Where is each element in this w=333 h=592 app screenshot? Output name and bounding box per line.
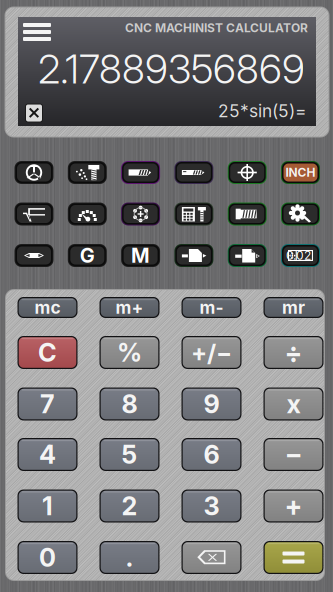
staticText: 5 [121, 439, 137, 470]
button[interactable]: Inch units [281, 161, 320, 184]
staticText: + [284, 490, 302, 522]
button[interactable]: mr [263, 297, 323, 318]
staticText: 7 [40, 389, 55, 419]
staticText: x [286, 389, 300, 419]
button[interactable]: Tap drill [68, 161, 107, 184]
staticText: +/− [191, 338, 232, 367]
staticText: CNC MACHINIST CALCULATOR [125, 21, 308, 35]
staticText: mr [282, 297, 305, 318]
staticText: 1 [42, 491, 53, 521]
staticText: 3 [203, 491, 219, 521]
button[interactable]: +/− [181, 336, 241, 369]
button[interactable]: x [263, 387, 323, 420]
button[interactable]: + [263, 489, 323, 522]
staticText: % [117, 337, 142, 368]
button[interactable]: . [99, 541, 159, 574]
button[interactable]: Speeds and feeds [68, 202, 107, 225]
button[interactable]: 6 [181, 438, 241, 471]
button[interactable]: m- [181, 297, 241, 318]
staticText: G [80, 243, 95, 268]
staticText: M [131, 243, 150, 268]
staticText: 2 [121, 491, 137, 521]
staticText: 6 [203, 439, 219, 470]
button[interactable]: M codes [121, 244, 160, 267]
staticText: . [125, 542, 133, 573]
button[interactable]: Tool search [281, 202, 320, 225]
button[interactable]: Thread data [228, 202, 267, 225]
staticText: 2.17889356869 [38, 45, 305, 93]
button[interactable]: ÷ [263, 336, 323, 369]
button[interactable]: Taper [14, 244, 53, 267]
button[interactable]: 5 [99, 438, 159, 471]
button[interactable]: 8 [99, 387, 159, 420]
button[interactable]: m+ [99, 297, 159, 318]
button[interactable]: Calculator tools [174, 202, 213, 225]
button[interactable]: Center finder [174, 244, 213, 267]
button[interactable]: 0 [17, 541, 77, 574]
button[interactable]: – [263, 438, 323, 471]
staticText: 8 [121, 389, 137, 419]
button[interactable]: C [17, 336, 77, 369]
button[interactable]: Backspace [181, 541, 241, 574]
staticText: INCH [285, 165, 315, 180]
staticText: 9 [203, 389, 219, 419]
button[interactable]: Thread calculator [14, 161, 53, 184]
button[interactable]: 2 [99, 489, 159, 522]
button[interactable]: 4 [17, 438, 77, 471]
button[interactable]: Trigonometry [14, 202, 53, 225]
button[interactable]: 1 [17, 489, 77, 522]
button[interactable]: Clear entry [25, 103, 43, 122]
staticText: 0.02 [286, 248, 311, 263]
staticText: ÷ [284, 336, 302, 369]
button[interactable]: mc [17, 297, 77, 318]
staticText: m+ [115, 297, 143, 318]
button[interactable]: Gage [228, 244, 267, 267]
staticText: 4 [39, 439, 56, 470]
button[interactable]: 3 [181, 489, 241, 522]
button[interactable]: Equals [263, 541, 323, 574]
button[interactable]: End mill [121, 161, 160, 184]
button[interactable]: Menu [21, 21, 53, 43]
button[interactable]: Tolerance [281, 244, 320, 267]
button[interactable]: 9 [181, 387, 241, 420]
staticText: m- [199, 297, 223, 318]
button[interactable]: Drill [174, 161, 213, 184]
button[interactable]: 7 [17, 387, 77, 420]
staticText: 25*sin(5)= [218, 100, 306, 121]
staticText: – [287, 438, 300, 471]
staticText: 0 [39, 542, 56, 573]
staticText: mc [34, 297, 60, 318]
staticText: C [38, 337, 57, 368]
button[interactable]: G codes [68, 244, 107, 267]
button[interactable]: Bolt circle [228, 161, 267, 184]
button[interactable]: Bolt pattern [121, 202, 160, 225]
button[interactable]: % [99, 336, 159, 369]
